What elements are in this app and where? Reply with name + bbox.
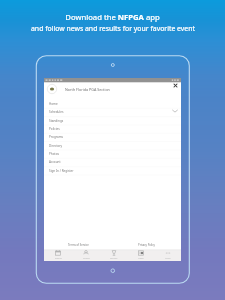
button[interactable]: Programs	[44, 133, 181, 141]
staticText: Home	[49, 102, 58, 106]
button[interactable]: Profile	[72, 249, 100, 260]
button[interactable]: Terms of Service	[68, 243, 89, 247]
staticText: Results	[110, 257, 118, 260]
staticText: and follow news and results for your fav…	[31, 24, 195, 33]
staticText: News	[138, 257, 144, 260]
button[interactable]: Account	[44, 158, 181, 166]
button[interactable]: Events	[44, 249, 72, 260]
button[interactable]: Schedules	[44, 108, 181, 116]
button[interactable]: Close	[173, 83, 178, 88]
button[interactable]: Privacy Policy	[138, 243, 155, 247]
staticText: Download the NFPGA app	[65, 12, 160, 22]
staticText: Schedules	[49, 110, 64, 114]
staticText: Directory	[49, 144, 63, 148]
button[interactable]: More	[154, 249, 181, 260]
button[interactable]: Photos	[44, 150, 181, 158]
staticText: Standings	[49, 119, 64, 123]
staticText: Photos	[49, 152, 59, 156]
staticText: Events	[55, 257, 62, 260]
staticText: Policies	[49, 127, 60, 131]
staticText: Sign In / Register	[49, 169, 74, 173]
button[interactable]: Home	[44, 100, 181, 108]
staticText: Account	[49, 160, 61, 164]
button[interactable]: Policies	[44, 125, 181, 133]
button[interactable]: Directory	[44, 142, 181, 150]
staticText: Programs	[49, 135, 63, 139]
staticText: More	[165, 257, 171, 260]
staticText: Profile	[83, 257, 90, 260]
staticText: North Florida PGA Section	[65, 87, 110, 92]
button[interactable]: Results	[100, 249, 127, 260]
button[interactable]: Sign In / Register	[44, 167, 181, 175]
button[interactable]: Standings	[44, 117, 181, 125]
button[interactable]: News	[127, 249, 154, 260]
